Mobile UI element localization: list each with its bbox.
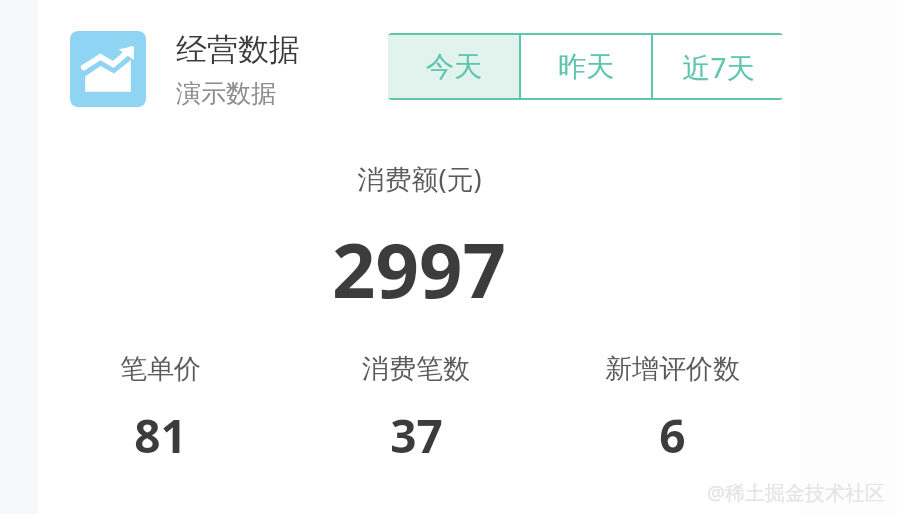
staticText: 笔单价 (120, 352, 201, 386)
button[interactable]: 今天 (388, 35, 519, 98)
staticText: 37 (390, 404, 443, 467)
staticText: 演示数据 (176, 78, 276, 108)
staticText: 经营数据 (176, 30, 300, 69)
staticText: 今天 (426, 49, 482, 84)
staticText: 消费额(元) (357, 160, 482, 197)
staticText: 消费笔数 (362, 352, 470, 386)
button[interactable]: Business data (70, 31, 146, 107)
staticText: 新增评价数 (605, 352, 740, 386)
staticText: 6 (659, 404, 686, 467)
staticText: 近7天 (682, 48, 755, 86)
staticText: 81 (134, 404, 187, 467)
staticText: 2997 (332, 217, 506, 321)
button[interactable]: 近7天 (653, 35, 783, 98)
staticText: @稀土掘金技术社区 (707, 479, 885, 506)
button[interactable]: 昨天 (521, 35, 651, 98)
staticText: 昨天 (558, 49, 614, 84)
